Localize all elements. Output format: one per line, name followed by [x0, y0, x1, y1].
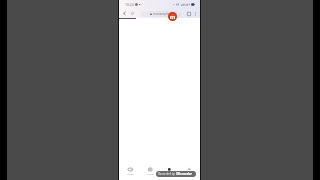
button[interactable]: m.example.cn [141, 11, 181, 17]
button[interactable]: More options [193, 9, 198, 18]
staticText: Mine [186, 172, 192, 175]
button[interactable]: Novel [142, 168, 158, 179]
staticText: Recorded by [158, 172, 175, 176]
staticText: Video [127, 172, 134, 175]
staticText: m.example.cn [153, 12, 173, 16]
button[interactable]: Video [122, 168, 138, 179]
button[interactable]: Home [161, 168, 177, 179]
staticText: Novel [147, 172, 154, 175]
button[interactable]: Screen recorder watermark [156, 171, 196, 177]
button[interactable]: Tabs [185, 9, 192, 18]
staticText: XRecorder [176, 172, 192, 176]
staticText: m [170, 13, 176, 20]
button[interactable]: Back [121, 9, 128, 18]
button[interactable]: Mine [181, 168, 197, 179]
button[interactable]: Account [168, 12, 177, 21]
staticText: 10:24 [125, 2, 134, 7]
button[interactable]: Home [129, 9, 136, 18]
